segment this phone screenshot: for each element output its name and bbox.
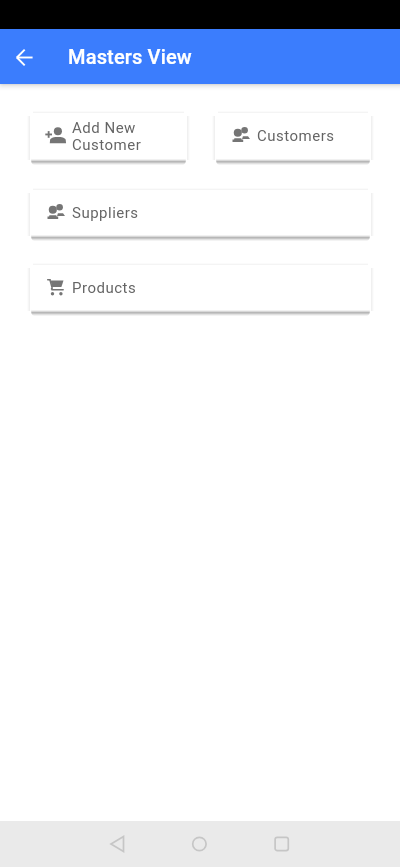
staticText: Products <box>72 279 137 297</box>
button[interactable]: Customers <box>215 113 371 159</box>
staticText: Customers <box>257 127 335 145</box>
staticText: Add New Customer <box>72 119 181 153</box>
staticText: Suppliers <box>72 204 139 222</box>
button[interactable]: Back <box>13 45 37 69</box>
staticText: Masters View <box>68 45 192 68</box>
button[interactable]: Add New Customer <box>30 113 187 159</box>
button[interactable]: Products <box>30 265 371 310</box>
button[interactable]: Suppliers <box>30 190 371 235</box>
